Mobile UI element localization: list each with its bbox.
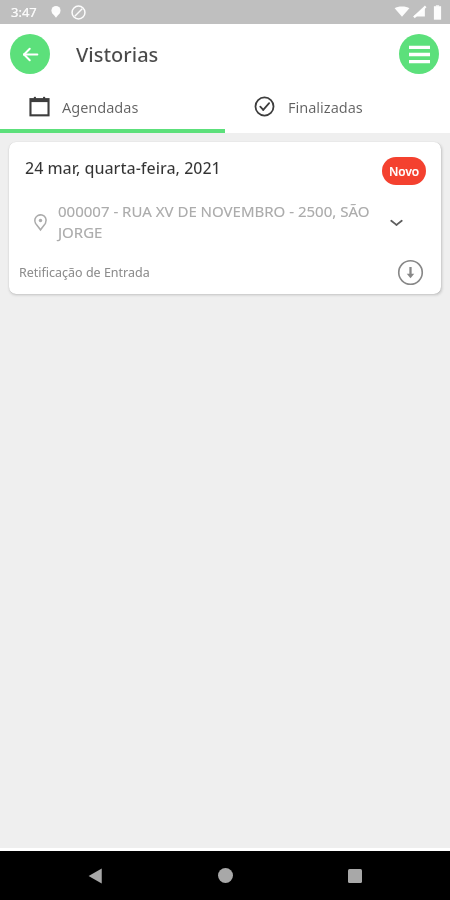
staticText: Vistorias <box>76 41 159 68</box>
button[interactable]: Home <box>189 851 261 900</box>
staticText: Finalizadas <box>288 97 363 117</box>
staticText: Agendadas <box>62 97 139 117</box>
button[interactable]: Expand <box>383 209 409 235</box>
staticText: 24 mar, quarta-feira, 2021 <box>25 157 221 179</box>
button[interactable]: Agendadas <box>0 84 225 129</box>
staticText: Retificação de Entrada <box>19 264 150 281</box>
staticText: 3:47 <box>11 3 37 21</box>
button[interactable]: Novo <box>382 157 426 185</box>
button[interactable]: Download <box>398 260 423 285</box>
button[interactable]: Finalizadas <box>225 84 450 129</box>
staticText: 000007 - RUA XV DE NOVEMBRO - 2500, SÃO … <box>58 201 374 243</box>
staticText: Novo <box>389 163 420 179</box>
button[interactable]: Recents <box>319 851 391 900</box>
button[interactable]: Menu <box>399 34 439 74</box>
button[interactable]: 24 mar, quarta-feira, 2021 <box>9 142 441 294</box>
button[interactable]: Back <box>59 851 131 900</box>
button[interactable]: Back <box>10 34 50 74</box>
